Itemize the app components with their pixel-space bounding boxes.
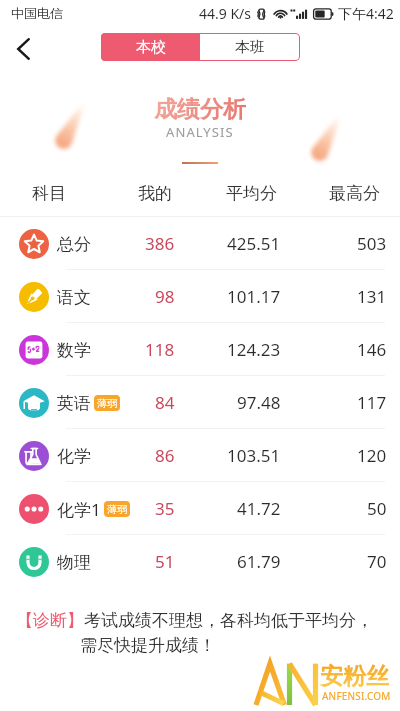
staticText: 语文 [57,287,91,308]
staticText: 503 [357,232,387,255]
staticText: 35 [155,497,175,520]
staticText: 平均分 [226,183,277,203]
staticText: 考试成绩不理想，各科均低于平均分， [84,610,373,631]
staticText: 化学1 [57,498,101,521]
button[interactable]: Back [5,31,41,67]
staticText: 数学 [57,340,91,361]
staticText: 【诊断】 [16,610,84,631]
staticText: 386 [145,232,175,255]
staticText: 131 [357,285,387,308]
staticText: 146 [357,338,387,361]
staticText: 425.51 [227,232,281,255]
staticText: 下午4:42 [338,4,394,23]
staticText: 98 [155,285,175,308]
button[interactable]: 化学 [0,429,400,482]
staticText: 需尽快提升成绩！ [80,635,216,656]
staticText: 50 [367,497,387,520]
button[interactable]: 化学1 [0,482,400,535]
staticText: 总分 [57,234,91,255]
button[interactable]: 数学 [0,323,400,376]
button[interactable]: 物理 [0,535,400,588]
button[interactable]: 总分 [0,217,400,270]
staticText: 化学 [57,446,91,467]
staticText: 124.23 [227,338,281,361]
button[interactable]: 英语 [0,376,400,429]
staticText: 101.17 [227,285,281,308]
staticText: 我的 [138,183,172,203]
staticText: 84 [155,391,175,414]
staticText: 科目 [32,183,66,203]
staticText: 120 [357,444,387,467]
staticText: 51 [155,550,175,573]
staticText: 97.48 [237,391,281,414]
button[interactable]: 语文 [0,270,400,323]
staticText: ANALYSIS [166,123,234,141]
staticText: 中国电信 [11,5,63,21]
staticText: 86 [155,444,175,467]
button[interactable]: 本校 [101,33,200,61]
staticText: 本班 [235,38,265,57]
button[interactable]: 本班 [200,33,300,61]
staticText: 最高分 [329,183,380,203]
staticText: 薄弱 [97,397,117,410]
staticText: 英语 [57,393,91,414]
staticText: 薄弱 [107,503,127,516]
staticText: 安粉丝 [320,662,389,691]
staticText: 成绩分析 [154,95,246,124]
staticText: 103.51 [227,444,281,467]
staticText: 物理 [57,552,91,573]
staticText: 118 [145,338,175,361]
staticText: 44.9 K/s [199,4,251,23]
staticText: 70 [367,550,387,573]
staticText: 41.72 [237,497,281,520]
staticText: 117 [357,391,387,414]
staticText: 本校 [136,38,166,57]
staticText: 61.79 [237,550,281,573]
staticText: ANFENSI.COM [322,689,391,703]
